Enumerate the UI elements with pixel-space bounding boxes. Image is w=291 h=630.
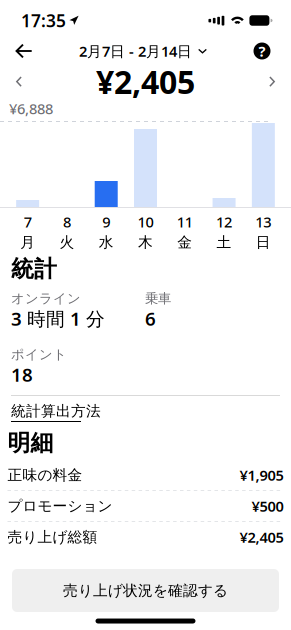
staticText: 9 [102, 212, 110, 231]
staticText: 3 時間 1 分 [11, 306, 105, 331]
staticText: オンライン [11, 290, 81, 307]
staticText: 8 [63, 212, 71, 231]
staticText: 統計 [11, 255, 57, 283]
staticText: 月 [20, 233, 35, 251]
staticText: ¥500 [251, 496, 283, 516]
staticText: 13 [255, 212, 271, 231]
staticText: 売り上げ状況を確認する [63, 581, 228, 599]
button[interactable]: 売り上げ状況を確認する [12, 569, 279, 612]
button[interactable]: Next week [257, 66, 287, 96]
staticText: 木 [138, 233, 153, 251]
staticText: 18 [11, 362, 33, 387]
staticText: 水 [99, 233, 114, 251]
button[interactable]: 統計算出方法 [11, 402, 101, 422]
staticText: 正味の料金 [7, 466, 82, 484]
staticText: 12 [216, 212, 232, 231]
staticText: ¥6,888 [9, 99, 53, 118]
staticText: ¥1,905 [239, 465, 283, 485]
staticText: 6 [145, 306, 156, 331]
button[interactable]: Help [245, 35, 279, 67]
staticText: 土 [217, 233, 232, 251]
staticText: 売り上げ総額 [7, 528, 97, 546]
staticText: ポイント [11, 346, 67, 363]
staticText: 17:35 [21, 9, 66, 32]
staticText: 2月7日 - 2月14日 [79, 41, 192, 61]
staticText: ? [258, 41, 265, 61]
staticText: 10 [137, 212, 153, 231]
staticText: 乗車 [145, 290, 171, 307]
staticText: 11 [177, 212, 193, 231]
staticText: 火 [59, 233, 74, 251]
button[interactable]: Previous week [4, 66, 34, 96]
staticText: プロモーション [7, 497, 112, 515]
staticText: 金 [177, 233, 192, 251]
staticText: ¥2,405 [239, 527, 283, 547]
staticText: 統計算出方法 [11, 402, 101, 420]
staticText: ¥2,405 [96, 60, 195, 103]
button[interactable]: 2月7日 - 2月14日 [79, 35, 207, 67]
button[interactable]: Back [7, 35, 41, 67]
staticText: 明細 [7, 429, 53, 457]
staticText: 日 [256, 233, 271, 251]
staticText: 7 [24, 212, 32, 231]
